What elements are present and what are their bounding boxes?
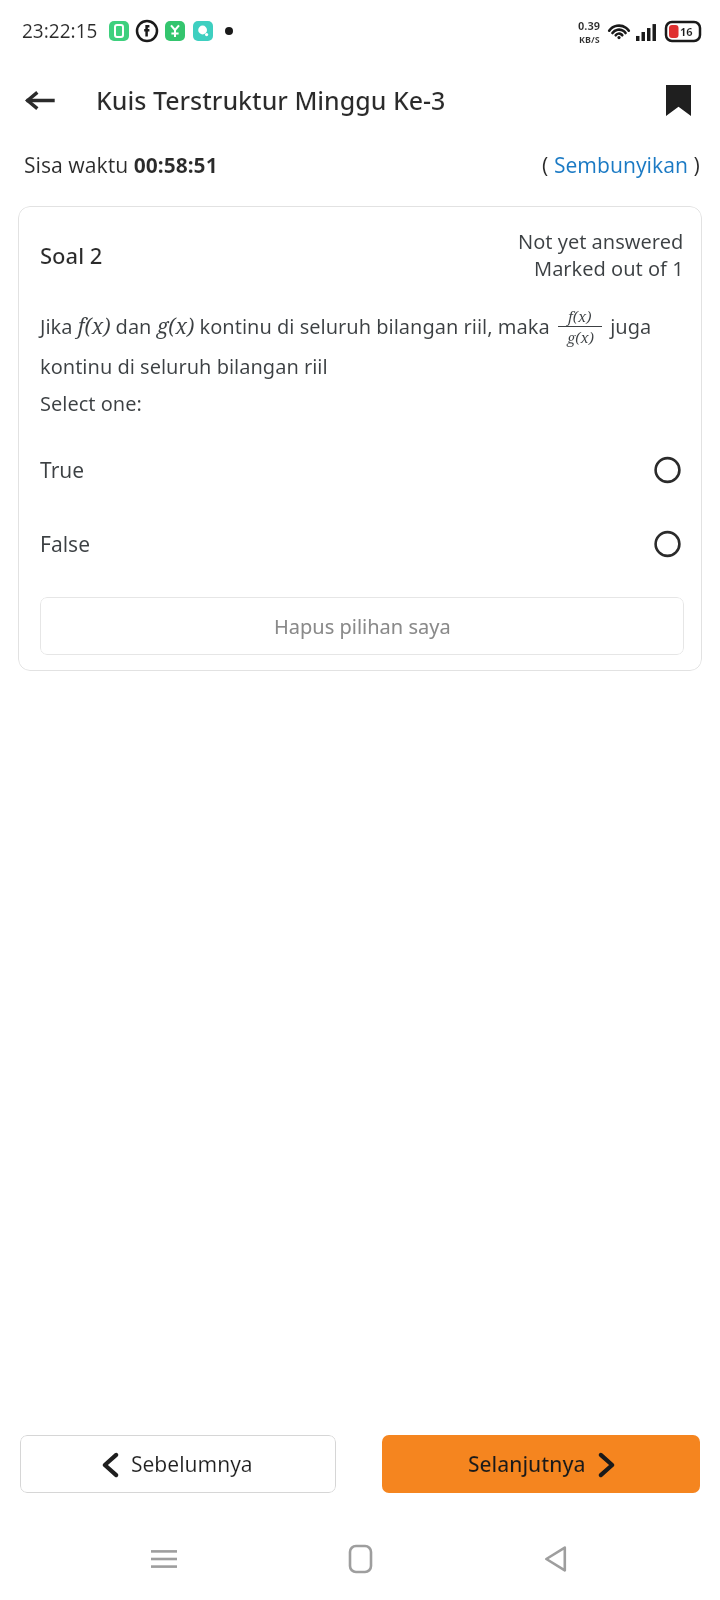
staticText: Hapus pilihan saya [274, 613, 451, 640]
button[interactable]: Bookmark [650, 72, 706, 128]
staticText: Sembunyikan [554, 151, 688, 180]
staticText: KB/S [579, 33, 600, 45]
staticText: True [40, 456, 85, 485]
button[interactable]: Back [10, 71, 68, 129]
staticText: ( [542, 151, 554, 180]
staticText: 23:22:15 [22, 18, 98, 44]
button[interactable]: Hapus pilihan saya [40, 597, 684, 655]
staticText: ) [688, 151, 700, 180]
staticText: Selanjutnya [468, 1450, 586, 1479]
button[interactable]: Recent apps [132, 1527, 196, 1591]
staticText: Sebelumnya [131, 1450, 253, 1479]
button[interactable]: Home [328, 1527, 392, 1591]
staticText: Sisa waktu 00:58:51 [24, 151, 218, 180]
staticText: f(x) [568, 306, 592, 326]
staticText: Marked out of 1 [534, 255, 684, 282]
staticText: Select one: [40, 390, 142, 417]
staticText: kontinu di seluruh bilangan riil [40, 353, 328, 380]
button[interactable]: ( [542, 151, 700, 180]
staticText: g(x) [567, 327, 594, 347]
button[interactable]: Selanjutnya [382, 1435, 700, 1493]
button[interactable]: False [40, 529, 684, 559]
staticText: Jika f(x) dan g(x) kontinu di seluruh bi… [40, 312, 555, 341]
button[interactable]: Back [524, 1527, 588, 1591]
button[interactable]: True [40, 455, 684, 485]
staticText: 16 [680, 24, 693, 39]
staticText: Kuis Terstruktur Minggu Ke-3 [96, 83, 446, 117]
staticText: Not yet answered [518, 228, 684, 255]
staticText: 0.39 [578, 18, 600, 33]
staticText: Soal 2 [40, 240, 103, 270]
staticText: juga [605, 313, 652, 340]
staticText: False [40, 530, 91, 559]
button[interactable]: Sebelumnya [20, 1435, 336, 1493]
